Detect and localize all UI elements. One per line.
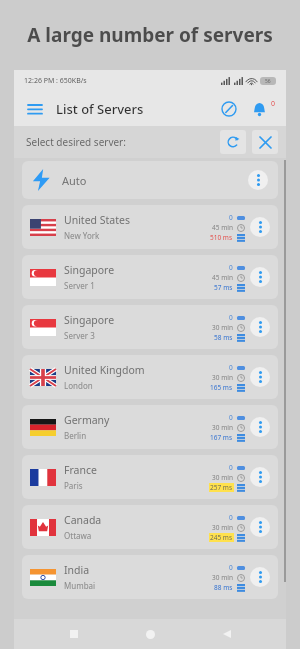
staticText: 165 ms [210,383,233,392]
button[interactable]: United Kingdom [22,355,278,399]
button[interactable]: More options [250,417,270,437]
staticText: Paris [64,480,83,491]
staticText: List of Servers [56,100,144,118]
staticText: 167 ms [210,433,233,442]
staticText: 57 ms [214,283,233,292]
button[interactable]: Refresh [220,130,246,154]
staticText: Ottawa [64,530,92,541]
staticText: Auto [62,173,87,188]
staticText: 88 ms [214,583,233,592]
staticText: 0 [229,513,233,522]
button[interactable]: India [22,555,278,599]
staticText: A large number of servers [27,22,273,48]
staticText: Mumbai [64,580,96,591]
button[interactable]: Canada [22,505,278,549]
staticText: United Kingdom [64,363,145,377]
button[interactable]: More options [250,267,270,287]
staticText: 12:26 PM : 650KB/s [24,76,87,86]
button[interactable]: Menu [24,98,46,120]
staticText: 0 [229,563,233,572]
staticText: Singapore [64,263,115,277]
button[interactable]: Back [210,619,244,649]
button[interactable]: Close [252,130,278,154]
staticText: 0 [229,263,233,272]
staticText: 0 [229,213,233,222]
button[interactable]: More options [248,170,268,190]
staticText: 30 min [212,573,233,582]
staticText: 0 [229,363,233,372]
button[interactable]: United States [22,205,278,249]
button[interactable]: More options [250,467,270,487]
staticText: 245 ms [210,533,233,542]
staticText: 45 min [212,273,233,282]
button[interactable]: More options [250,217,270,237]
staticText: London [64,380,93,391]
button[interactable]: More options [250,317,270,337]
staticText: Server 1 [64,280,95,291]
button[interactable]: France [22,455,278,499]
button[interactable]: More options [250,517,270,537]
staticText: 0 [229,313,233,322]
staticText: Canada [64,513,102,527]
staticText: India [64,563,90,577]
staticText: 0 [229,463,233,472]
staticText: 0 [271,99,276,109]
button[interactable]: Germany [22,405,278,449]
staticText: 30 min [212,323,233,332]
staticText: Server 3 [64,330,95,341]
button[interactable]: More options [250,367,270,387]
staticText: Germany [64,413,110,427]
staticText: 30 min [212,373,233,382]
button[interactable]: More options [250,567,270,587]
button[interactable]: Compass [217,97,241,121]
button[interactable]: Recents [57,619,91,649]
button[interactable]: Notifications [247,97,271,121]
staticText: Select desired server: [26,135,126,149]
staticText: France [64,463,97,477]
button[interactable]: Home [133,619,167,649]
staticText: New York [64,230,100,241]
button[interactable]: Auto [22,161,278,199]
staticText: 45 min [212,223,233,232]
staticText: 56 [265,78,271,85]
button[interactable]: Singapore [22,305,278,349]
staticText: Berlin [64,430,87,441]
staticText: 30 min [212,423,233,432]
staticText: 30 min [212,473,233,482]
button[interactable]: Singapore [22,255,278,299]
staticText: 257 ms [210,483,233,492]
staticText: Singapore [64,313,115,327]
staticText: 30 min [212,523,233,532]
staticText: United States [64,213,130,227]
staticText: 0 [229,413,233,422]
staticText: 510 ms [210,233,233,242]
staticText: 58 ms [214,333,233,342]
